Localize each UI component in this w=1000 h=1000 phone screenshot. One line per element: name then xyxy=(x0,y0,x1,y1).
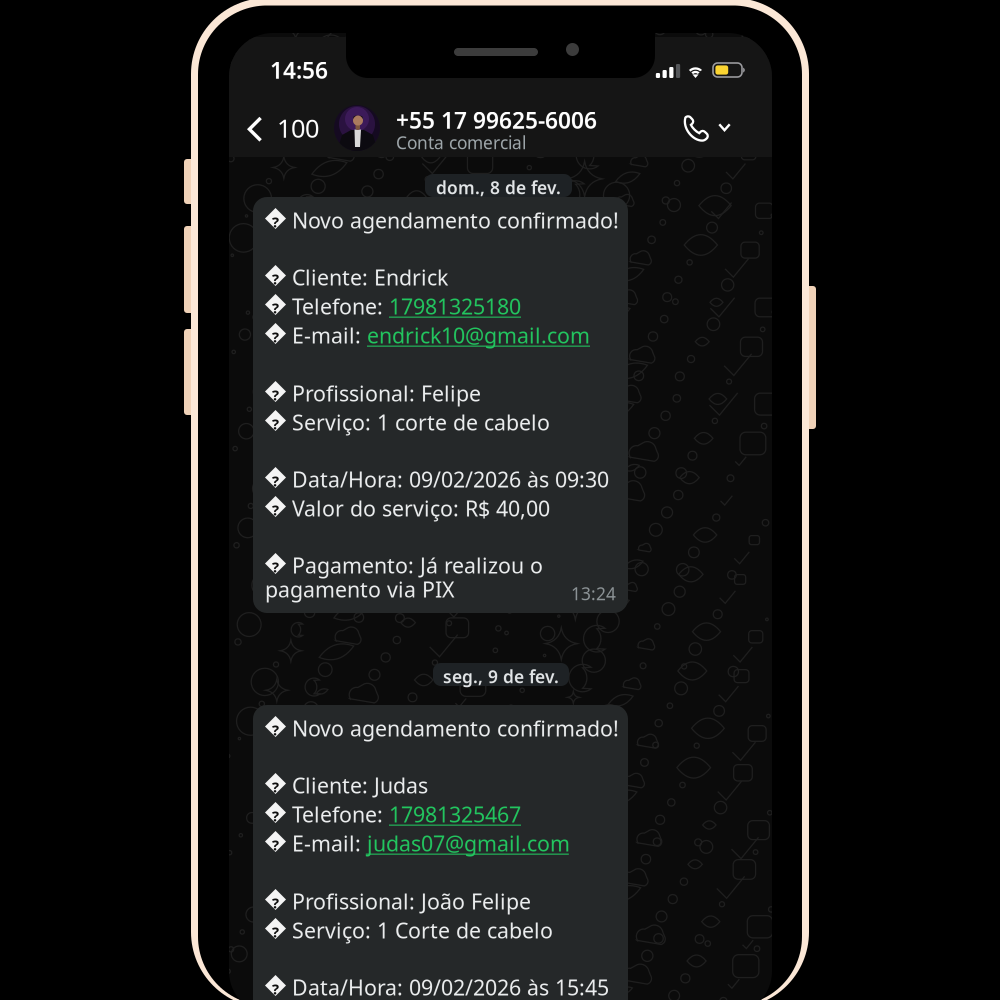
staticText: Serviço: 1 Corte de cabelo xyxy=(292,916,553,944)
staticText: 17981325467 xyxy=(389,800,521,828)
staticText: ? xyxy=(272,471,279,490)
staticText: Novo agendamento confirmado! xyxy=(292,206,619,234)
staticText: Novo agendamento confirmado! xyxy=(292,714,619,742)
staticText: pagamento via PIX xyxy=(265,575,455,603)
staticText: Telefone: xyxy=(292,800,389,828)
staticText: Conta comercial xyxy=(396,131,526,154)
staticText: ? xyxy=(272,557,279,576)
staticText: ? xyxy=(272,835,279,854)
staticText: ? xyxy=(272,269,279,288)
staticText: 14:56 xyxy=(270,55,328,85)
staticText: Telefone: xyxy=(292,292,389,320)
staticText: ? xyxy=(272,212,279,231)
staticText: E-mail: xyxy=(292,829,367,857)
staticText: ? xyxy=(272,500,279,519)
staticText: Profissional: João Felipe xyxy=(292,887,531,915)
staticText: ? xyxy=(272,327,279,346)
staticText: Data/Hora: 09/02/2026 às 09:30 xyxy=(292,465,609,493)
staticText: Profissional: Felipe xyxy=(292,379,481,407)
staticText: ? xyxy=(272,385,279,404)
staticText: ? xyxy=(272,777,279,796)
button[interactable]: +55 17 99625-6006 xyxy=(334,101,634,153)
staticText: ? xyxy=(272,414,279,433)
button[interactable]: Call xyxy=(679,111,755,145)
staticText: ? xyxy=(272,806,279,825)
staticText: +55 17 99625-6006 xyxy=(396,105,597,135)
staticText: 17981325180 xyxy=(389,292,521,320)
staticText: ? xyxy=(272,720,279,739)
staticText: seg., 9 de fev. xyxy=(443,665,559,688)
staticText: E-mail: xyxy=(292,321,367,349)
staticText: judas07@gmail.com xyxy=(367,829,570,857)
button[interactable]: 100 xyxy=(241,111,331,147)
staticText: Cliente: Endrick xyxy=(292,263,448,291)
staticText: Data/Hora: 09/02/2026 às 15:45 xyxy=(292,973,609,1000)
staticText: ? xyxy=(272,893,279,912)
staticText: Serviço: 1 corte de cabelo xyxy=(292,408,550,436)
staticText: 13:24 xyxy=(571,582,616,605)
staticText: endrick10@gmail.com xyxy=(367,321,590,349)
staticText: 100 xyxy=(277,111,319,145)
staticText: Pagamento: Já realizou o xyxy=(292,551,543,579)
staticText: dom., 8 de fev. xyxy=(436,176,561,199)
staticText: ? xyxy=(272,979,279,998)
staticText: ? xyxy=(272,298,279,317)
staticText: Valor do serviço: R$ 40,00 xyxy=(292,494,550,522)
staticText: ? xyxy=(272,922,279,941)
staticText: Cliente: Judas xyxy=(292,771,428,799)
